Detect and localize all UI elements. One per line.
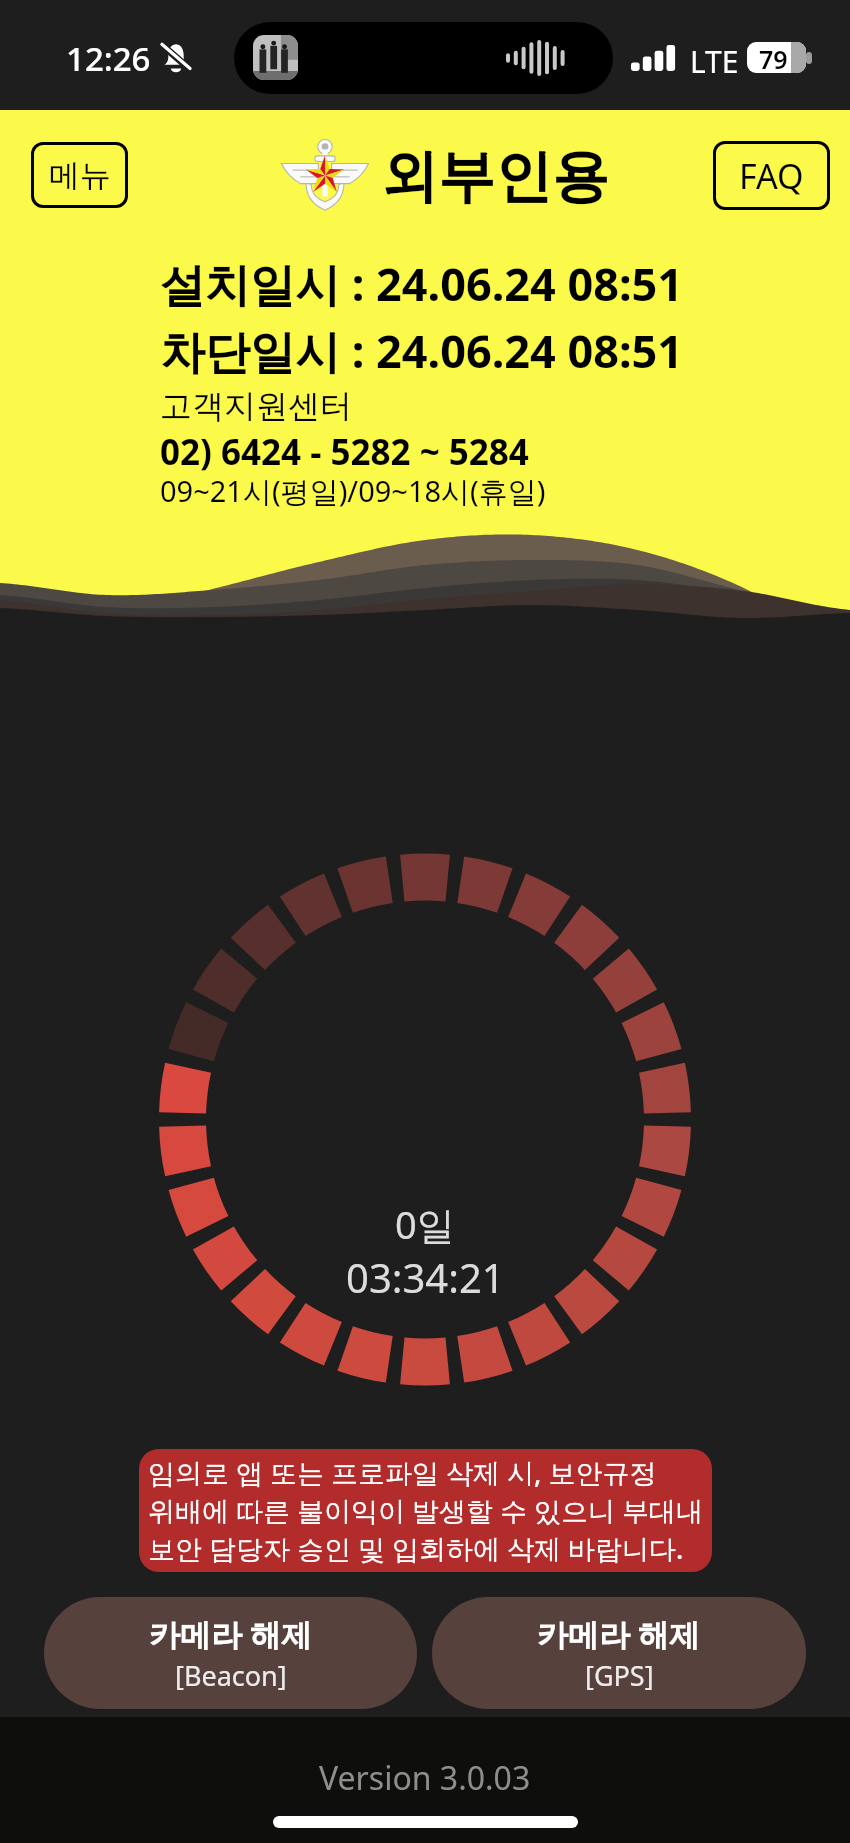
button[interactable]: FAQ: [713, 141, 830, 210]
staticText: LTE: [690, 41, 739, 82]
staticText: 카메라 해제: [149, 1613, 313, 1655]
other: Silent mode: [160, 41, 192, 73]
staticText: 09~21시(평일)/09~18시(휴일): [160, 471, 546, 511]
staticText: 설치일시 : 24.06.24 08:51: [160, 253, 684, 314]
staticText: Version 3.0.03: [319, 1756, 531, 1800]
staticText: [Beacon]: [175, 1657, 287, 1694]
button[interactable]: 카메라 해제: [44, 1597, 417, 1709]
staticText: FAQ: [739, 153, 804, 199]
staticText: 임의로 앱 또는 프로파일 삭제 시, 보안규정 위배에 따른 불이익이 발생할…: [148, 1454, 704, 1567]
staticText: 0일: [395, 1198, 455, 1250]
button[interactable]: 임의로 앱 또는 프로파일 삭제 시, 보안규정 위배에 따른 불이익이 발생할…: [139, 1449, 712, 1572]
other: Cellular signal: [631, 45, 675, 71]
staticText: 차단일시 : 24.06.24 08:51: [160, 320, 684, 381]
button[interactable]: 메뉴: [31, 142, 128, 208]
staticText: 02) 6424 - 5282 ~ 5284: [160, 428, 529, 476]
staticText: 03:34:21: [346, 1250, 505, 1304]
staticText: 12:26: [66, 36, 151, 81]
staticText: 79: [759, 42, 788, 73]
staticText: 메뉴: [49, 156, 111, 195]
staticText: [GPS]: [585, 1657, 654, 1694]
staticText: 외부인용: [381, 141, 609, 213]
staticText: 고객지원센터: [160, 386, 352, 426]
staticText: 카메라 해제: [537, 1613, 701, 1655]
button[interactable]: 카메라 해제: [432, 1597, 806, 1709]
